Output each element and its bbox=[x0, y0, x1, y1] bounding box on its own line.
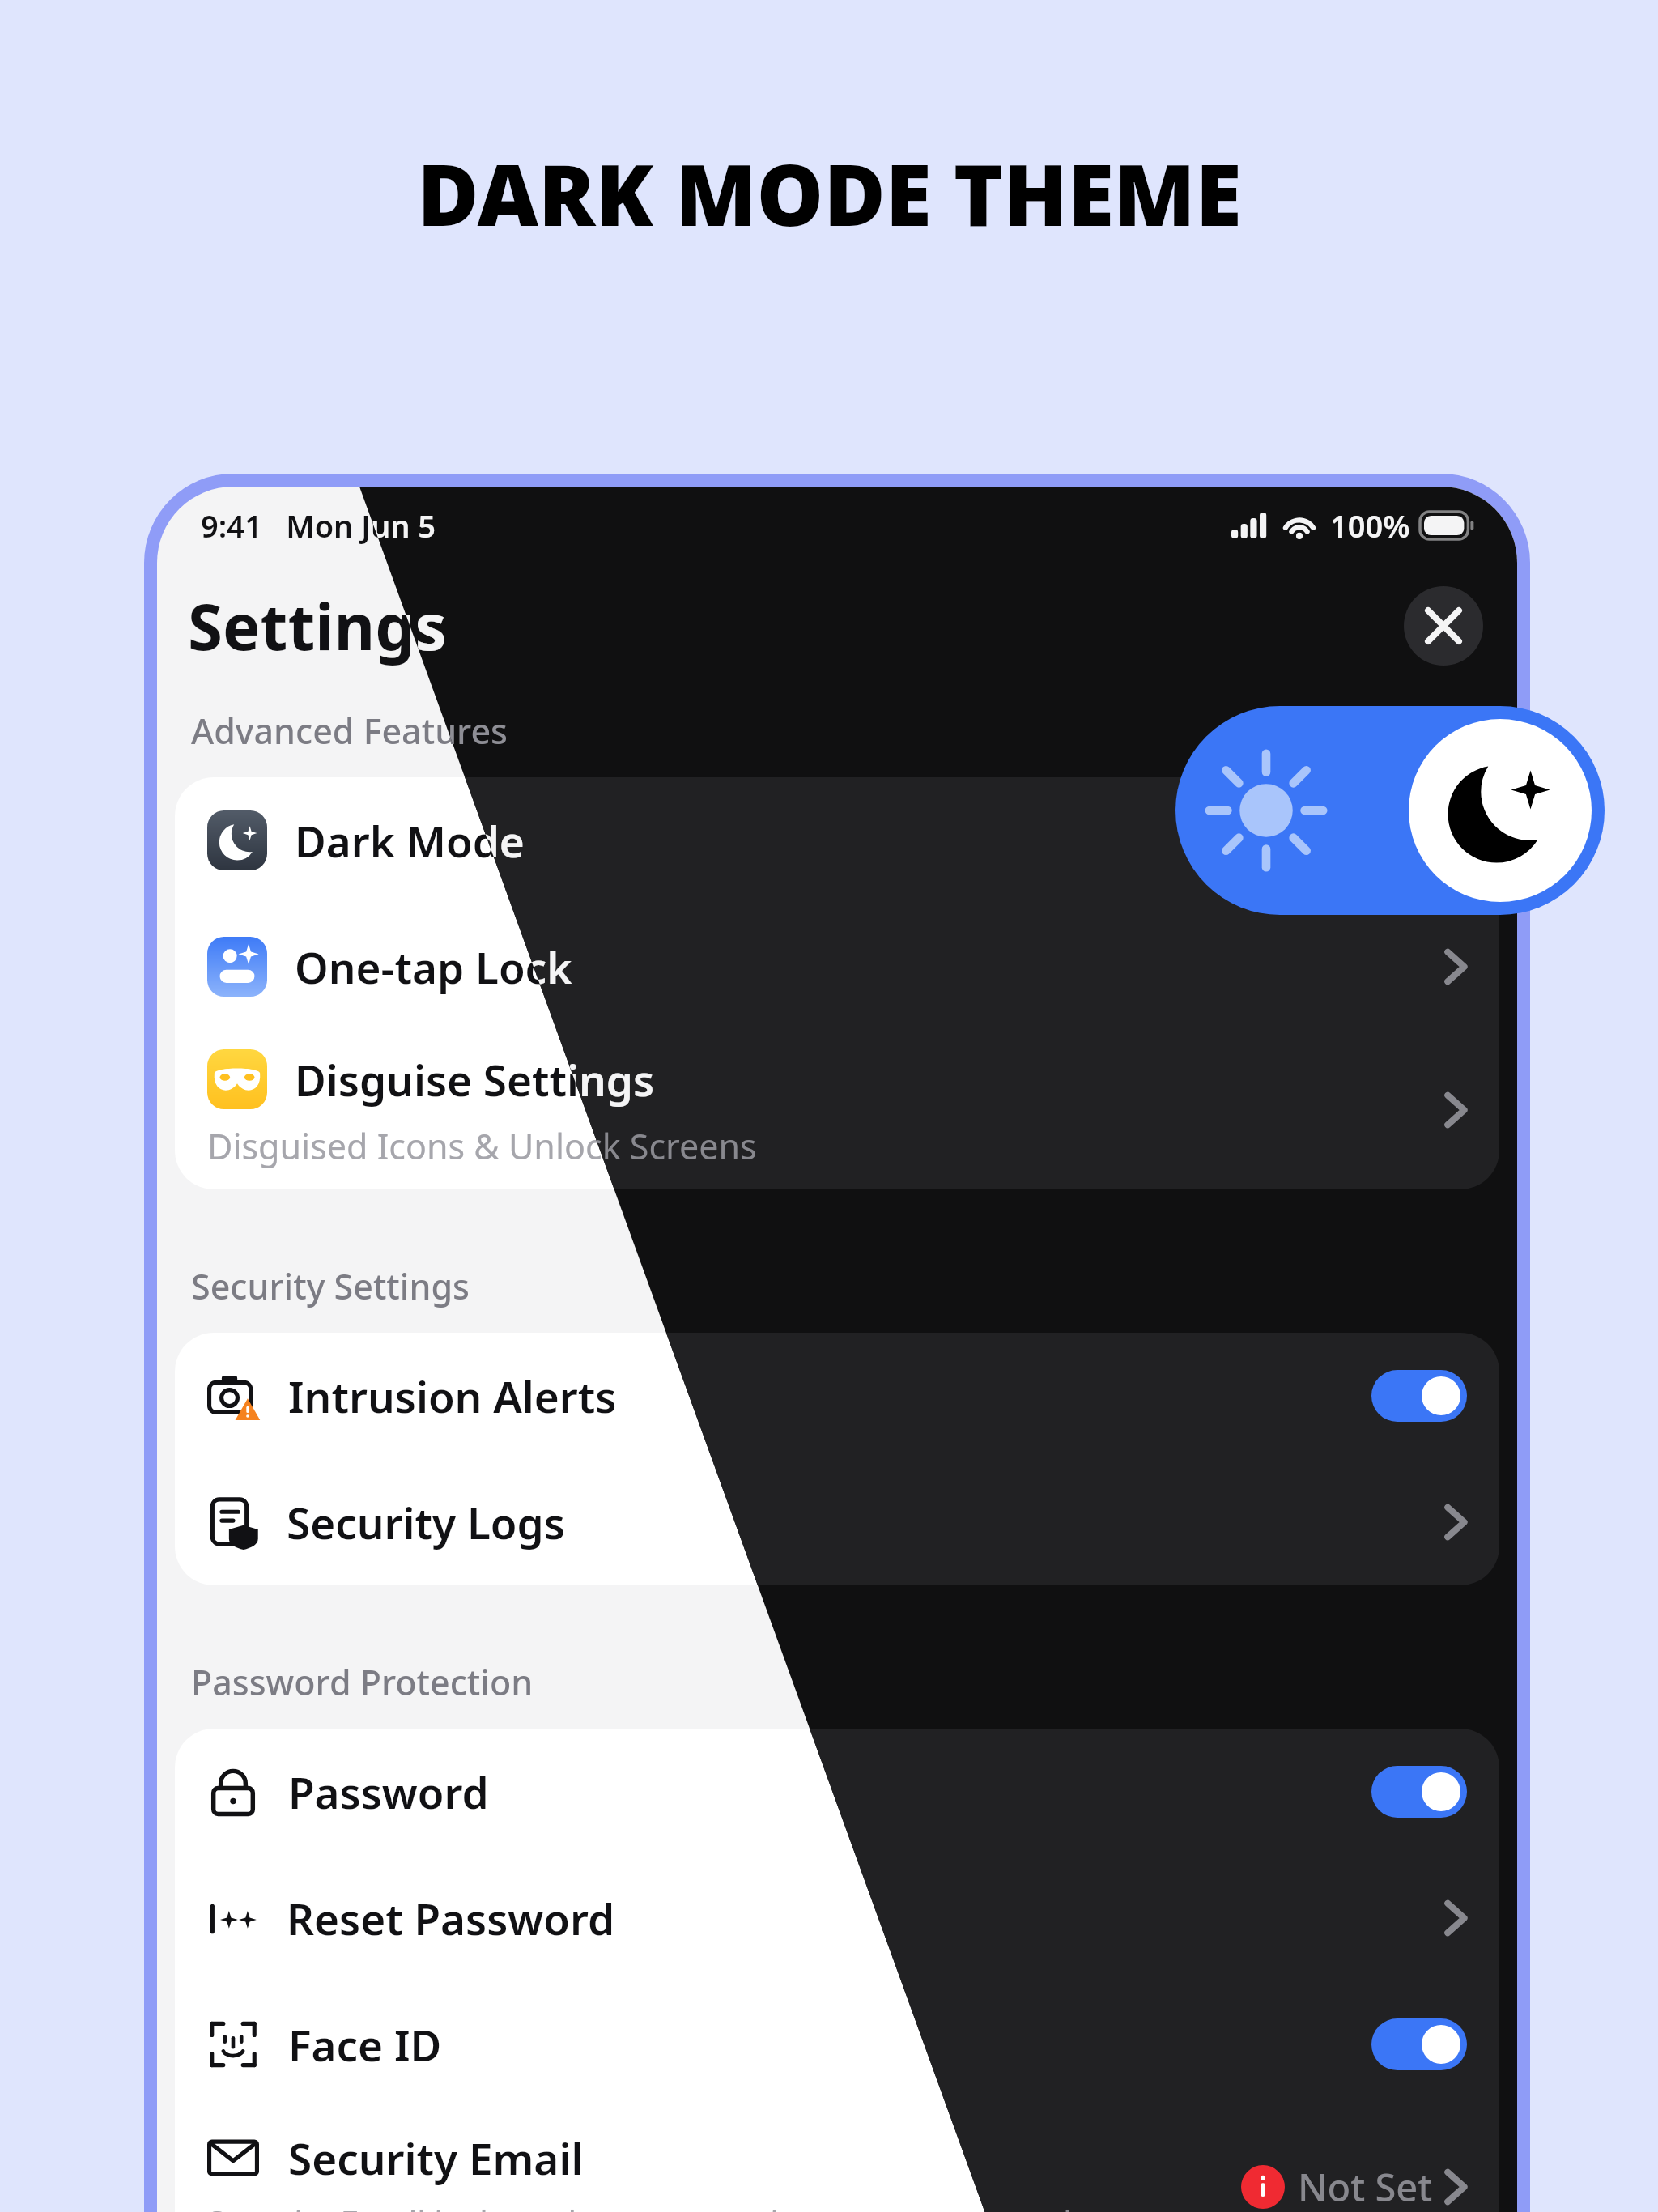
button[interactable]: Reset Password bbox=[175, 1855, 1499, 1981]
button[interactable]: Security Email bbox=[175, 2108, 1499, 2212]
button[interactable]: Disguise Settings bbox=[175, 1030, 1499, 1189]
staticText: Dark Mode bbox=[295, 811, 525, 870]
staticText: 100% bbox=[1330, 504, 1410, 547]
staticText: Password bbox=[288, 1763, 489, 1821]
button[interactable]: Security Email bbox=[175, 2108, 1499, 2212]
staticText: Intrusion Alerts bbox=[288, 1367, 617, 1425]
button[interactable]: Intrusion Alerts on bbox=[1371, 1370, 1467, 1422]
button[interactable]: Disguise Settings bbox=[175, 1030, 1499, 1189]
button[interactable]: Face ID on bbox=[1371, 2018, 1467, 2070]
button[interactable]: One-tap Lock bbox=[175, 904, 1499, 1030]
staticText: Not Set bbox=[1298, 2161, 1433, 2212]
staticText: Password Protection bbox=[191, 1658, 534, 1706]
button[interactable]: Face ID on bbox=[1371, 2018, 1467, 2070]
staticText: Security Logs bbox=[287, 1493, 565, 1551]
button[interactable]: Password bbox=[175, 1729, 1499, 1855]
staticText: 100% bbox=[1330, 504, 1410, 547]
staticText: Not Set bbox=[1298, 2161, 1433, 2212]
staticText: Disguise Settings bbox=[295, 1050, 655, 1108]
staticText: One-tap Lock bbox=[295, 938, 572, 996]
staticText: Disguised Icons & Unlock Screens bbox=[207, 1122, 757, 1170]
staticText: Password Protection bbox=[191, 1658, 534, 1706]
staticText: Reset Password bbox=[287, 1889, 615, 1947]
staticText: 9:41 Mon Jun 5 bbox=[201, 504, 436, 547]
button[interactable]: Reset Password bbox=[175, 1855, 1499, 1981]
staticText: Disguised Icons & Unlock Screens bbox=[207, 1122, 757, 1170]
staticText: 9:41 Mon Jun 5 bbox=[201, 504, 436, 547]
button[interactable]: Password on bbox=[1371, 1766, 1467, 1818]
staticText: Security Email bbox=[288, 2129, 584, 2187]
staticText: Security Settings bbox=[191, 1262, 470, 1310]
button[interactable]: Intrusion Alerts bbox=[175, 1333, 1499, 1459]
staticText: DARK MODE THEME bbox=[417, 136, 1242, 251]
button[interactable]: Toggle dark mode bbox=[1175, 706, 1605, 915]
staticText: One-tap Lock bbox=[295, 938, 572, 996]
staticText: Face ID bbox=[288, 2015, 442, 2074]
staticText: Password bbox=[288, 1763, 489, 1821]
staticText: Face ID bbox=[288, 2015, 442, 2074]
button[interactable]: Face ID bbox=[175, 1981, 1499, 2108]
staticText: Intrusion Alerts bbox=[288, 1367, 617, 1425]
button[interactable]: Close bbox=[1404, 586, 1483, 666]
button[interactable]: Password bbox=[175, 1729, 1499, 1855]
staticText: Security Email bbox=[288, 2129, 584, 2187]
button[interactable]: Dark Mode bbox=[175, 777, 1499, 904]
staticText: Dark Mode bbox=[295, 811, 525, 870]
staticText: Advanced Features bbox=[191, 707, 508, 755]
button[interactable]: Dark Mode bbox=[175, 777, 1499, 904]
staticText: Security Logs bbox=[287, 1493, 565, 1551]
staticText: Security Email is the only way to retrie… bbox=[207, 2200, 1072, 2212]
staticText: Disguise Settings bbox=[295, 1050, 655, 1108]
button[interactable]: Security Logs bbox=[175, 1459, 1499, 1585]
button[interactable]: Password on bbox=[1371, 1766, 1467, 1818]
button[interactable]: Intrusion Alerts bbox=[175, 1333, 1499, 1459]
button[interactable]: Close bbox=[1404, 586, 1483, 666]
staticText: Security Email is the only way to retrie… bbox=[207, 2200, 1072, 2212]
button[interactable]: Security Logs bbox=[175, 1459, 1499, 1585]
button[interactable]: One-tap Lock bbox=[175, 904, 1499, 1030]
button[interactable]: Face ID bbox=[175, 1981, 1499, 2108]
staticText: Settings bbox=[188, 583, 447, 669]
staticText: Advanced Features bbox=[191, 707, 508, 755]
button[interactable]: Intrusion Alerts on bbox=[1371, 1370, 1467, 1422]
staticText: Settings bbox=[188, 583, 447, 669]
staticText: Security Settings bbox=[191, 1262, 470, 1310]
staticText: Reset Password bbox=[287, 1889, 615, 1947]
